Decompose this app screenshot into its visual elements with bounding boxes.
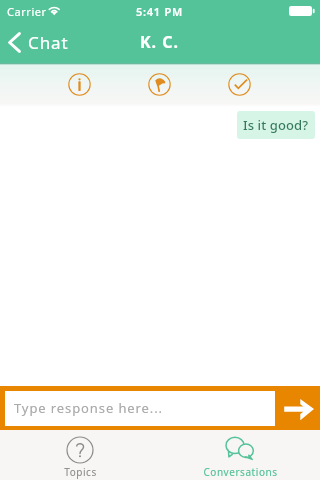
- button[interactable]: Conversations: [160, 430, 320, 480]
- staticText: Chat: [28, 31, 69, 54]
- staticText: K. C.: [140, 31, 180, 53]
- staticText: Topics: [64, 465, 97, 479]
- button[interactable]: Type response here...: [5, 391, 275, 426]
- button[interactable]: Chat: [0, 26, 79, 59]
- button[interactable]: Is it good?: [237, 111, 315, 139]
- button[interactable]: Flag conversation: [142, 67, 176, 101]
- button[interactable]: Mark done: [222, 67, 256, 101]
- button[interactable]: Send: [275, 386, 320, 430]
- button[interactable]: Topics: [0, 430, 160, 480]
- staticText: 5:41 PM: [136, 4, 184, 19]
- staticText: Type response here...: [14, 399, 163, 417]
- staticText: Is it good?: [243, 116, 309, 134]
- button[interactable]: Information: [62, 67, 96, 101]
- staticText: Conversations: [203, 465, 278, 479]
- staticText: Carrier: [7, 4, 47, 19]
